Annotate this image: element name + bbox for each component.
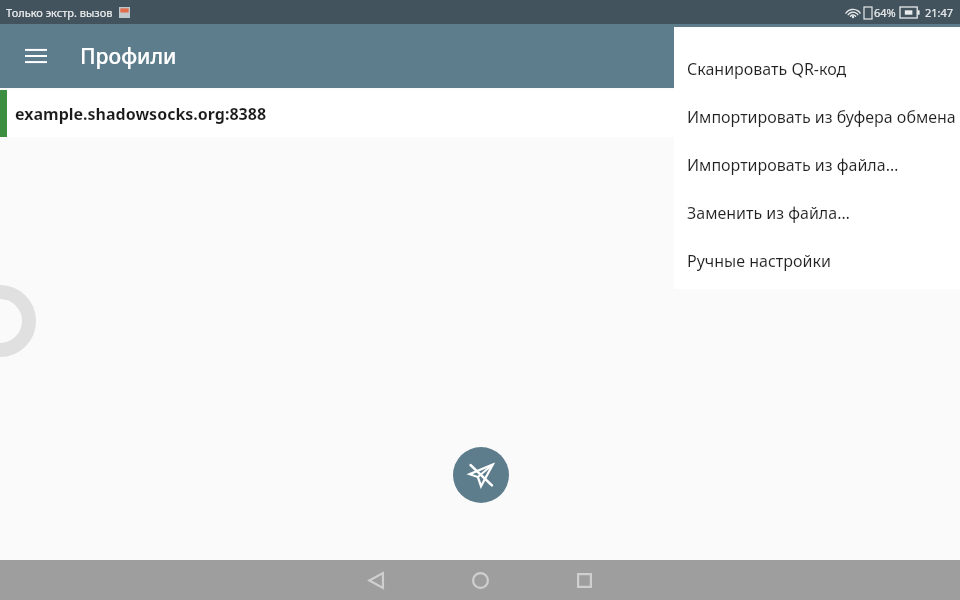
- button[interactable]: Импортировать из буфера обмена: [674, 93, 960, 141]
- staticText: 64%: [874, 5, 896, 20]
- button[interactable]: Сканировать QR-код: [674, 45, 960, 93]
- staticText: example.shadowsocks.org:8388: [15, 103, 267, 125]
- staticText: Импортировать из файла…: [687, 154, 899, 176]
- staticText: Сканировать QR-код: [687, 58, 847, 80]
- staticText: 21:47: [925, 5, 954, 20]
- staticText: Импортировать из буфера обмена: [687, 106, 956, 128]
- button[interactable]: example.shadowsocks.org:8388: [0, 90, 960, 137]
- button[interactable]: Импортировать из файла…: [674, 141, 960, 189]
- staticText: Профили: [80, 42, 177, 71]
- button[interactable]: Open navigation drawer: [12, 32, 60, 80]
- button[interactable]: Recent apps: [546, 560, 622, 600]
- staticText: Ручные настройки: [687, 250, 831, 272]
- button[interactable]: Connect: [453, 447, 509, 503]
- staticText: Только экстр. вызов: [6, 5, 113, 20]
- button[interactable]: Ручные настройки: [674, 237, 960, 285]
- button[interactable]: Back: [338, 560, 414, 600]
- button[interactable]: Заменить из файла…: [674, 189, 960, 237]
- button[interactable]: Home: [442, 560, 518, 600]
- staticText: Заменить из файла…: [687, 202, 850, 224]
